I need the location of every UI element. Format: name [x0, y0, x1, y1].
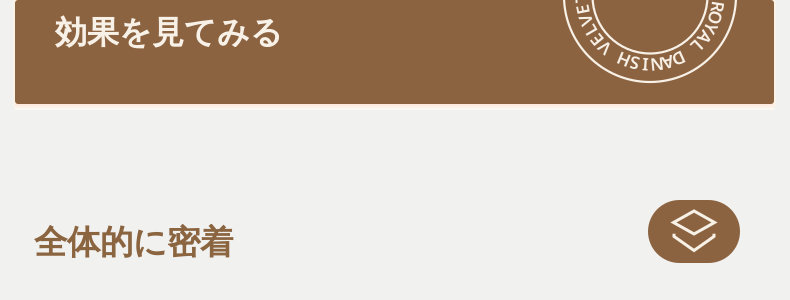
staticText: 効果を見てみる	[55, 13, 283, 52]
staticText: 全体的に密着	[34, 222, 233, 263]
button[interactable]: Layers	[648, 200, 740, 263]
